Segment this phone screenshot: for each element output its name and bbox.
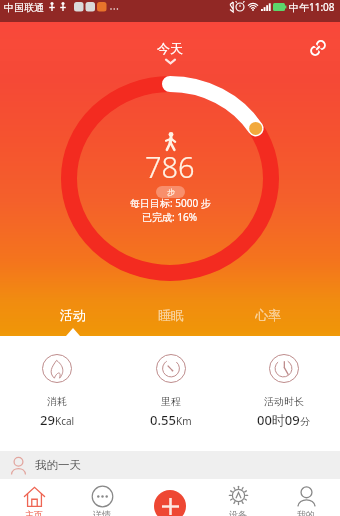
staticText: 0.55 <box>150 411 176 428</box>
staticText: 消耗 <box>47 395 67 408</box>
button[interactable]: 我的 <box>272 486 340 516</box>
button[interactable]: 活动时长 <box>227 336 340 428</box>
button[interactable]: Add <box>154 490 186 516</box>
staticText: 活动 <box>60 307 86 323</box>
staticText: 786 <box>145 147 195 186</box>
staticText: 已完成: 16% <box>142 210 198 224</box>
button[interactable]: 我的一天 <box>0 451 340 479</box>
button[interactable]: 睡眠 <box>122 307 219 335</box>
staticText: 心率 <box>255 307 281 323</box>
button[interactable]: 心率 <box>219 307 316 335</box>
staticText: 详情 <box>93 509 111 516</box>
button[interactable]: Bind device <box>306 36 330 60</box>
button[interactable]: 今天 <box>157 40 183 64</box>
staticText: 中午11:08 <box>289 0 335 14</box>
staticText: Km <box>176 414 192 428</box>
staticText: 每日目标: 5000 步 <box>130 196 211 210</box>
button[interactable]: 里程 <box>114 336 227 428</box>
button[interactable]: 详情 <box>68 486 136 516</box>
staticText: Kcal <box>55 414 75 428</box>
staticText: 今天 <box>157 40 183 56</box>
staticText: 设备 <box>229 509 247 516</box>
staticText: 主页 <box>25 509 43 516</box>
staticText: 中国联通 <box>4 1 44 14</box>
staticText: 我的 <box>297 509 315 516</box>
button[interactable]: 消耗 <box>0 336 114 428</box>
staticText: 分 <box>300 415 310 428</box>
staticText: 我的一天 <box>35 458 81 472</box>
staticText: 睡眠 <box>158 307 184 323</box>
button[interactable]: 活动 <box>24 307 122 335</box>
staticText: 29 <box>40 411 55 428</box>
button[interactable]: 主页 <box>0 486 68 516</box>
staticText: 里程 <box>161 395 181 408</box>
staticText: 活动时长 <box>264 395 304 408</box>
staticText: 00时09 <box>257 411 300 428</box>
staticText: 步 <box>167 187 175 197</box>
button[interactable]: 设备 <box>204 486 272 516</box>
